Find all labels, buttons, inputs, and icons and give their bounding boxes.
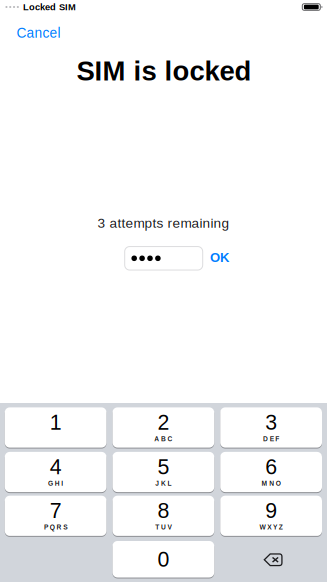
button[interactable]: 7 — [5, 496, 107, 536]
button[interactable]: 0 — [112, 541, 214, 577]
staticText: 0 — [157, 547, 169, 571]
staticText: W — [260, 523, 266, 531]
staticText: T — [155, 523, 159, 531]
staticText: SIM is locked — [76, 56, 251, 86]
button[interactable]: 9 — [220, 496, 322, 536]
staticText: K — [161, 480, 166, 487]
staticText: 8 — [157, 499, 169, 522]
button[interactable]: OK — [204, 246, 234, 268]
staticText: L — [168, 480, 172, 487]
staticText: C — [168, 435, 173, 443]
button[interactable]: 4 — [5, 452, 107, 492]
staticText: O — [276, 480, 281, 487]
staticText: 2 — [157, 410, 169, 434]
button[interactable]: 3 — [220, 407, 322, 448]
staticText: G — [48, 480, 53, 487]
staticText: 1 — [50, 410, 62, 434]
staticText: E — [270, 435, 274, 443]
staticText: 9 — [265, 499, 277, 522]
button[interactable]: Cancel — [16, 21, 72, 45]
staticText: 4 — [50, 455, 62, 479]
button[interactable]: 2 — [112, 407, 214, 448]
staticText: N — [269, 480, 274, 487]
button[interactable]: 6 — [220, 452, 322, 492]
button[interactable]: 8 — [112, 496, 214, 536]
staticText: 3 — [265, 410, 277, 434]
staticText: X — [267, 523, 271, 531]
button[interactable]: 1 — [5, 407, 107, 448]
staticText: OK — [210, 250, 229, 265]
staticText: D — [263, 435, 268, 443]
staticText: 7 — [50, 499, 62, 522]
staticText: 6 — [265, 455, 277, 479]
staticText: F — [275, 435, 279, 443]
button[interactable]: 5 — [112, 452, 214, 492]
staticText: Locked SIM — [23, 2, 76, 12]
staticText: I — [61, 480, 63, 487]
staticText: U — [161, 523, 166, 531]
staticText: Z — [279, 523, 283, 531]
staticText: V — [168, 523, 172, 531]
staticText: H — [55, 480, 60, 487]
staticText: S — [63, 523, 67, 531]
staticText: Y — [273, 523, 277, 531]
staticText: A — [154, 435, 159, 443]
staticText: Q — [50, 523, 55, 531]
staticText: Cancel — [16, 25, 60, 41]
staticText: J — [155, 480, 159, 487]
staticText: R — [56, 523, 61, 531]
staticText: P — [44, 523, 48, 531]
button[interactable]: Delete — [220, 541, 322, 577]
staticText: M — [261, 480, 267, 487]
staticText: 5 — [157, 455, 169, 479]
staticText: B — [161, 435, 166, 443]
staticText: 3 attempts remaining — [97, 215, 229, 231]
